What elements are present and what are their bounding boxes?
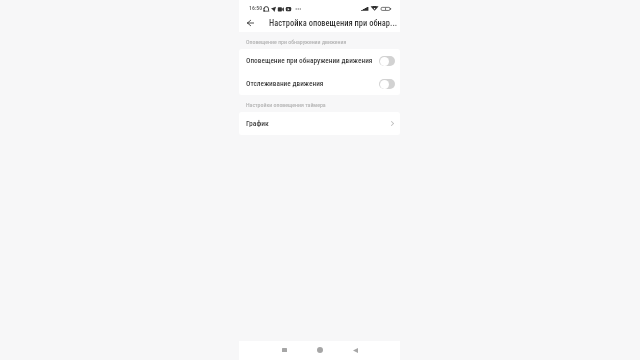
button[interactable]: Back	[346, 344, 365, 356]
button[interactable]: Оповещение при обнаружении движения	[239, 49, 400, 72]
staticText: Оповещение при обнаружении движения	[246, 39, 347, 46]
button[interactable]: Home	[310, 344, 329, 356]
button[interactable]: Recent apps	[275, 344, 294, 356]
staticText: Настройки оповещения таймера	[246, 102, 326, 109]
staticText: Отслеживание движения	[246, 79, 379, 88]
button[interactable]: Отслеживание движения	[239, 72, 400, 95]
staticText: Оповещение при обнаружении движения	[246, 56, 379, 65]
staticText: Настройка оповещения при обнар...	[269, 18, 398, 28]
staticText: 16:50	[249, 5, 263, 12]
button[interactable]: Back	[243, 16, 257, 30]
button[interactable]: График	[239, 112, 400, 134]
staticText: График	[246, 119, 391, 128]
